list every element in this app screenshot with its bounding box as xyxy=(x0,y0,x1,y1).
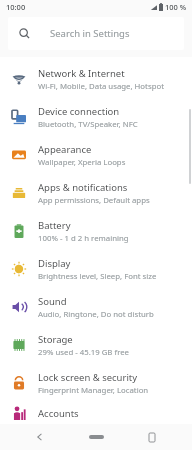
button[interactable]: Recent apps xyxy=(142,427,162,447)
button[interactable]: Appearance xyxy=(0,136,192,174)
button[interactable]: Sound xyxy=(0,288,192,326)
staticText: Battery xyxy=(38,219,71,232)
staticText: Wi-Fi, Mobile, Data usage, Hotspot xyxy=(38,81,164,92)
staticText: 29% used - 45.19 GB free xyxy=(38,347,130,358)
button[interactable]: Back xyxy=(30,427,50,447)
staticText: Brightness level, Sleep, Font size xyxy=(38,271,157,282)
staticText: App permissions, Default apps xyxy=(38,195,150,206)
button[interactable]: Device connection xyxy=(0,98,192,136)
staticText: Fingerprint Manager, Location xyxy=(38,385,149,396)
button[interactable]: Search in Settings xyxy=(8,17,184,50)
staticText: Audio, Ringtone, Do not disturb xyxy=(38,309,154,320)
button[interactable]: Display xyxy=(0,250,192,288)
staticText: 100% - 1 d 2 h remaining xyxy=(38,233,129,244)
staticText: Storage xyxy=(38,333,73,346)
staticText: Wallpaper, Xperia Loops xyxy=(38,157,126,168)
staticText: 100 % xyxy=(165,2,187,12)
staticText: Network & Internet xyxy=(38,67,125,80)
staticText: Sound xyxy=(38,295,67,308)
staticText: Search in Settings xyxy=(50,27,130,40)
button[interactable]: Accounts xyxy=(0,402,192,424)
staticText: Accounts xyxy=(38,407,79,420)
staticText: Display xyxy=(38,257,71,270)
button[interactable]: Home xyxy=(81,428,111,446)
button[interactable]: Network & Internet xyxy=(0,60,192,98)
staticText: Lock screen & security xyxy=(38,371,138,384)
staticText: Apps & notifications xyxy=(38,181,128,194)
button[interactable]: Battery xyxy=(0,212,192,250)
staticText: 10:00 xyxy=(6,2,26,12)
button[interactable]: Lock screen & security xyxy=(0,364,192,402)
staticText: Appearance xyxy=(38,143,92,156)
staticText: Bluetooth, TV/Speaker, NFC xyxy=(38,119,138,130)
button[interactable]: Storage xyxy=(0,326,192,364)
staticText: Device connection xyxy=(38,105,120,118)
button[interactable]: Apps & notifications xyxy=(0,174,192,212)
